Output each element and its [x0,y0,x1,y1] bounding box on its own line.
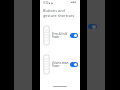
staticText: Power [52,35,60,38]
staticText: 9:30 ▪ ▪ [43,1,54,5]
staticText: Power [52,64,60,67]
staticText: Press & hold [52,32,67,35]
staticText: Volume down + [52,61,69,64]
other: Toggle [70,62,78,67]
staticText: ▪▪▪ [71,1,77,4]
staticText: Buttons and gesture shortcuts [43,8,75,18]
button[interactable]: Press & hold [40,24,80,45]
other: Toggle [70,33,78,38]
button[interactable]: Volume down + [40,53,80,74]
